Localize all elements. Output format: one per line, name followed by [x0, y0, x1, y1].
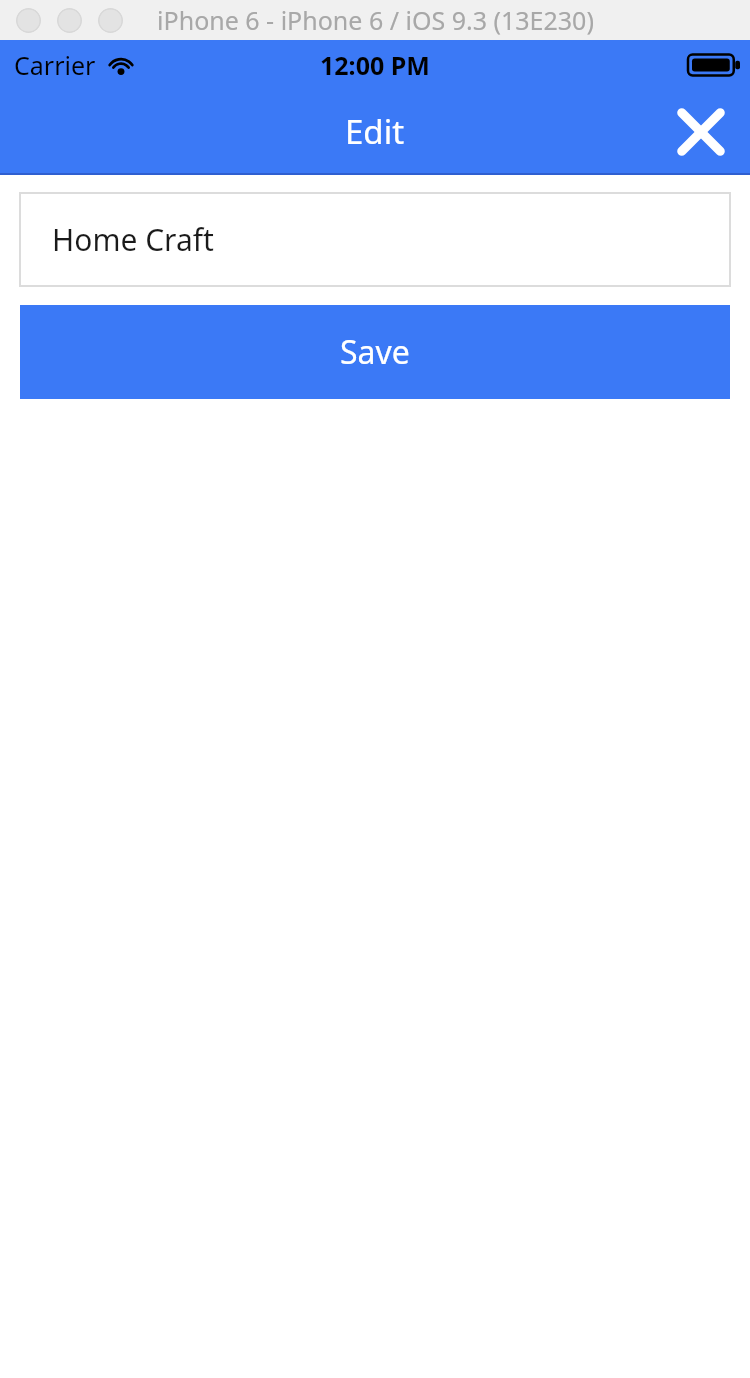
staticText: Carrier	[14, 48, 96, 82]
button[interactable]: Save	[20, 305, 730, 399]
staticText: iPhone 6 - iPhone 6 / iOS 9.3 (13E230)	[157, 3, 594, 37]
staticText: 12:00 PM	[320, 48, 430, 82]
button[interactable]: Home Craft	[20, 193, 730, 286]
staticText: Save	[340, 330, 410, 374]
staticText: Home Craft	[52, 219, 214, 260]
staticText: Edit	[345, 109, 405, 154]
button[interactable]: Close	[668, 99, 734, 165]
